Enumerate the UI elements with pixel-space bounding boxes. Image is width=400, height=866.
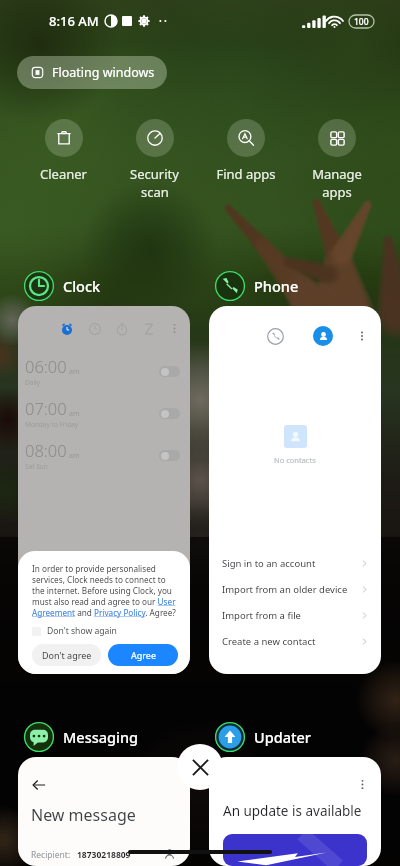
staticText: Don't show again: [47, 625, 117, 637]
staticText: 18730218809: [77, 849, 131, 861]
button[interactable]: Create a new contact: [222, 628, 369, 654]
button[interactable]: No contacts: [209, 306, 381, 674]
button[interactable]: Close all: [177, 744, 223, 790]
button[interactable]: Import from an older device: [222, 576, 369, 602]
button[interactable]: Sign in to an account: [222, 550, 369, 576]
button[interactable]: Cleaner: [18, 119, 109, 183]
staticText: 100: [354, 16, 369, 28]
staticText: Find apps: [216, 165, 276, 183]
staticText: scan: [141, 183, 169, 201]
staticText: Messaging: [63, 727, 139, 747]
button[interactable]: [168, 322, 181, 335]
button[interactable]: More options: [209, 757, 381, 866]
staticText: Agree: [131, 649, 156, 661]
staticText: 06:00: [25, 355, 67, 377]
button[interactable]: More options: [356, 778, 369, 791]
button[interactable]: [116, 323, 128, 335]
button[interactable]: [143, 323, 155, 335]
button[interactable]: 08:00: [25, 434, 180, 476]
button[interactable]: 06:00: [25, 350, 180, 392]
button[interactable]: Back: [31, 777, 47, 793]
button[interactable]: Don't show again: [32, 623, 117, 639]
staticText: am: [69, 451, 80, 461]
staticText: In order to provide personalised service…: [32, 563, 178, 618]
button[interactable]: Import from a file: [222, 602, 369, 628]
button[interactable]: Clock: [18, 268, 101, 304]
staticText: Import from an older device: [222, 583, 348, 596]
button[interactable]: 06:00: [18, 306, 190, 674]
staticText: Import from a file: [222, 609, 301, 622]
button[interactable]: [89, 323, 101, 335]
staticText: Create a new contact: [222, 635, 316, 648]
button[interactable]: [61, 323, 73, 335]
staticText: 8:16 AM: [49, 12, 99, 30]
staticText: Sign in to an account: [222, 557, 316, 570]
button[interactable]: Manage: [291, 119, 382, 201]
staticText: Recipient:: [31, 849, 71, 861]
button[interactable]: Updater: [209, 719, 311, 755]
staticText: Floating windows: [52, 64, 155, 81]
button[interactable]: Floating windows: [17, 56, 167, 89]
staticText: 08:00: [25, 439, 67, 461]
button[interactable]: [159, 408, 180, 419]
button[interactable]: Security: [109, 119, 200, 201]
button[interactable]: Messaging: [18, 719, 139, 755]
staticText: Clock: [63, 276, 101, 296]
staticText: apps: [322, 183, 352, 201]
button[interactable]: Phone: [209, 268, 299, 304]
staticText: Updater: [254, 727, 311, 747]
button[interactable]: Back: [18, 757, 190, 866]
staticText: am: [69, 409, 80, 419]
staticText: 07:00: [25, 397, 67, 419]
staticText: Phone: [254, 276, 299, 296]
staticText: Monday to Friday: [25, 420, 79, 429]
staticText: Don't agree: [42, 649, 92, 661]
button[interactable]: Don't agree: [32, 644, 101, 666]
staticText: Daily: [25, 378, 41, 387]
button[interactable]: [159, 450, 180, 461]
button[interactable]: Find apps: [200, 119, 291, 183]
staticText: New message: [31, 804, 136, 826]
button[interactable]: [159, 366, 180, 377]
staticText: Security: [130, 165, 179, 183]
staticText: An update is available: [223, 802, 362, 820]
staticText: No contacts: [274, 455, 316, 465]
staticText: am: [69, 367, 80, 377]
staticText: Cleaner: [40, 165, 87, 183]
staticText: Sat Sun: [25, 462, 48, 471]
button[interactable]: 07:00: [25, 392, 180, 434]
button[interactable]: Agree: [108, 644, 178, 666]
staticText: Manage: [312, 165, 362, 183]
